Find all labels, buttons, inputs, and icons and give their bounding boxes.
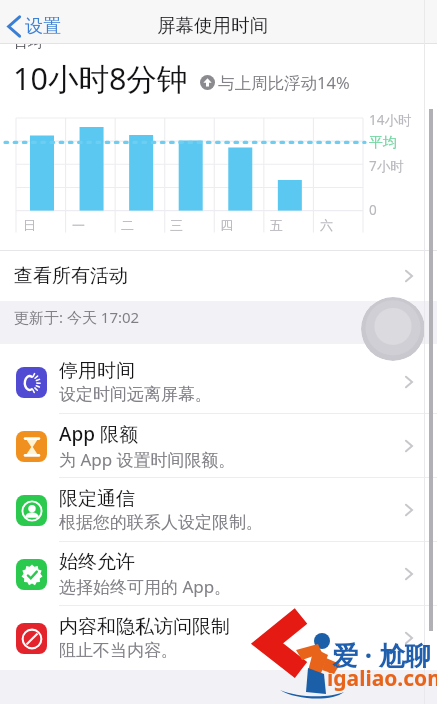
- button[interactable]: App 限额: [0, 414, 437, 478]
- staticText: 内容和隐私访问限制: [59, 615, 230, 639]
- staticText: 选择始终可用的 App。: [59, 575, 232, 598]
- staticText: 爱 · 尬聊: [332, 637, 431, 673]
- staticText: 限定通信: [59, 487, 135, 511]
- staticText: 根据您的联系人设定限制。: [59, 512, 263, 533]
- staticText: App 限额: [59, 421, 138, 447]
- staticText: 14小时: [369, 111, 412, 129]
- staticText: 日: [23, 217, 36, 233]
- staticText: 更新于: 今天 17:02: [14, 307, 140, 327]
- staticText: 7小时: [369, 157, 404, 175]
- staticText: 查看所有活动: [14, 264, 128, 288]
- staticText: 与上周比浮动14%: [218, 71, 350, 94]
- staticText: 平均: [369, 134, 397, 152]
- button[interactable]: 停用时间: [0, 350, 437, 414]
- staticText: 设定时间远离屏幕。: [59, 384, 212, 405]
- staticText: 停用时间: [59, 359, 135, 383]
- staticText: 屏幕使用时间: [157, 14, 268, 37]
- staticText: 六: [320, 217, 333, 233]
- button[interactable]: 设置: [7, 4, 61, 48]
- staticText: 为 App 设置时间限额。: [59, 448, 236, 471]
- staticText: 三: [170, 217, 183, 233]
- button[interactable]: Assistive touch: [361, 297, 425, 361]
- staticText: 始终允许: [59, 550, 135, 574]
- button[interactable]: 内容和隐私访问限制: [0, 606, 437, 670]
- staticText: 日均: [14, 34, 42, 52]
- staticText: igaliao.com: [327, 664, 437, 693]
- staticText: 二: [121, 217, 134, 233]
- button[interactable]: 始终允许: [0, 542, 437, 606]
- staticText: 阻止不当内容。: [59, 640, 178, 661]
- staticText: 五: [270, 217, 283, 233]
- staticText: 四: [220, 217, 233, 233]
- button[interactable]: 查看所有活动: [0, 251, 437, 301]
- staticText: 一: [72, 217, 85, 233]
- staticText: 0: [369, 201, 377, 219]
- staticText: 设置: [25, 15, 61, 38]
- staticText: 10小时8分钟: [13, 57, 188, 99]
- button[interactable]: 限定通信: [0, 478, 437, 542]
